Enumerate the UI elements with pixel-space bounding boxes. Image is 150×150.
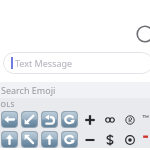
button[interactable]: Camera: [136, 25, 150, 43]
button[interactable]: Symbol: [81, 111, 98, 128]
button[interactable]: Symbol: [141, 111, 150, 128]
button[interactable]: Search Emoji: [0, 82, 150, 98]
button[interactable]: Arrow emoji: [41, 111, 58, 128]
staticText: SYMBOLS: [0, 100, 15, 109]
button[interactable]: Arrow emoji: [21, 111, 38, 128]
button[interactable]: Arrow emoji: [1, 131, 18, 148]
button[interactable]: Symbol: [141, 131, 150, 148]
button[interactable]: Arrow emoji: [1, 111, 18, 128]
button[interactable]: Arrow emoji: [21, 131, 38, 148]
button[interactable]: Symbol: [81, 131, 98, 148]
button[interactable]: Symbol: [121, 111, 138, 128]
button[interactable]: Text Message: [3, 52, 150, 74]
button[interactable]: Symbol: [121, 131, 138, 148]
button[interactable]: Symbol: [101, 131, 118, 148]
button[interactable]: Arrow emoji: [41, 131, 58, 148]
button[interactable]: Symbol: [101, 111, 118, 128]
staticText: Search Emoji: [1, 84, 56, 96]
button[interactable]: Arrow emoji: [61, 131, 78, 148]
button[interactable]: Arrow emoji: [61, 111, 78, 128]
staticText: Text Message: [15, 57, 73, 69]
